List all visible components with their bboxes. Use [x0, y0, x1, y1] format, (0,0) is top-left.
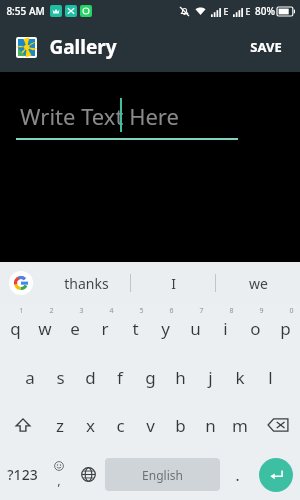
staticText: 4 — [109, 306, 114, 316]
button[interactable]: k — [225, 353, 255, 401]
button[interactable]: n — [195, 401, 225, 449]
staticText: , — [57, 471, 61, 489]
staticText: 0 — [289, 306, 294, 316]
staticText: 1 — [19, 306, 24, 316]
button[interactable]: e — [60, 304, 90, 353]
staticText: z — [56, 414, 64, 437]
button[interactable]: s — [45, 353, 75, 401]
staticText: 5 — [139, 306, 144, 316]
button[interactable]: thanks — [42, 262, 130, 304]
staticText: Write Text Here — [20, 101, 179, 131]
staticText: I — [171, 274, 176, 293]
button[interactable]: r — [90, 304, 120, 353]
staticText: ?123 — [7, 465, 38, 484]
button[interactable]: i — [210, 304, 240, 353]
button[interactable]: l — [255, 353, 285, 401]
staticText: 8:55 AM — [6, 4, 45, 18]
staticText: o — [250, 317, 261, 340]
button[interactable]: x — [75, 401, 105, 449]
button[interactable]: English — [105, 458, 220, 491]
button[interactable]: Change language — [73, 449, 103, 500]
staticText: s — [56, 366, 65, 389]
button[interactable]: Google — [9, 271, 33, 295]
button[interactable]: p — [270, 304, 300, 353]
staticText: Gallery — [49, 34, 117, 60]
button[interactable]: h — [165, 353, 195, 401]
button[interactable]: g — [135, 353, 165, 401]
staticText: 80% — [255, 4, 275, 18]
staticText: p — [280, 317, 291, 340]
staticText: t — [132, 317, 139, 340]
staticText: i — [223, 317, 228, 340]
button[interactable]: t — [120, 304, 150, 353]
staticText: e — [70, 317, 80, 340]
staticText: English — [142, 467, 183, 483]
button[interactable]: Emoji and comma — [44, 449, 73, 500]
staticText: y — [161, 317, 170, 340]
button[interactable]: v — [135, 401, 165, 449]
staticText: k — [235, 366, 245, 389]
button[interactable]: d — [75, 353, 105, 401]
staticText: h — [175, 366, 186, 389]
staticText: 9 — [259, 306, 264, 316]
button[interactable]: j — [195, 353, 225, 401]
button[interactable]: f — [105, 353, 135, 401]
button[interactable]: q — [0, 304, 30, 353]
button[interactable]: I — [131, 262, 215, 304]
staticText: a — [25, 366, 35, 389]
staticText: thanks — [64, 274, 109, 293]
staticText: n — [205, 414, 216, 437]
staticText: v — [146, 414, 155, 437]
button[interactable]: w — [30, 304, 60, 353]
button[interactable]: z — [45, 401, 75, 449]
button[interactable]: m — [225, 401, 255, 449]
staticText: q — [10, 317, 21, 340]
staticText: u — [190, 317, 201, 340]
staticText: 3 — [79, 306, 84, 316]
staticText: 8 — [229, 306, 234, 316]
staticText: m — [232, 414, 248, 437]
staticText: b — [175, 414, 186, 437]
button[interactable]: y — [150, 304, 180, 353]
button[interactable]: o — [240, 304, 270, 353]
button[interactable]: Enter — [259, 458, 293, 492]
staticText: . — [235, 465, 240, 485]
staticText: E — [223, 5, 229, 17]
staticText: l — [268, 366, 273, 389]
button[interactable]: b — [165, 401, 195, 449]
button[interactable]: c — [105, 401, 135, 449]
staticText: j — [208, 366, 213, 389]
button[interactable]: . — [222, 449, 252, 500]
button[interactable]: u — [180, 304, 210, 353]
button[interactable]: a — [15, 353, 45, 401]
staticText: x — [86, 414, 95, 437]
button[interactable]: we — [216, 262, 300, 304]
staticText: c — [116, 414, 125, 437]
staticText: d — [85, 366, 96, 389]
staticText: 7 — [199, 306, 204, 316]
button[interactable]: Gallery — [18, 39, 35, 56]
staticText: w — [38, 317, 52, 340]
button[interactable]: Shift — [0, 401, 45, 449]
button[interactable]: ?123 — [0, 449, 44, 500]
staticText: 2 — [49, 306, 54, 316]
button[interactable]: SAVE — [246, 32, 286, 62]
staticText: r — [101, 317, 109, 340]
staticText: we — [249, 274, 268, 293]
staticText: 6 — [169, 306, 174, 316]
button[interactable]: Backspace — [255, 401, 300, 449]
staticText: f — [117, 366, 123, 389]
staticText: SAVE — [250, 38, 282, 56]
staticText: g — [145, 366, 156, 389]
staticText: E — [245, 5, 251, 17]
